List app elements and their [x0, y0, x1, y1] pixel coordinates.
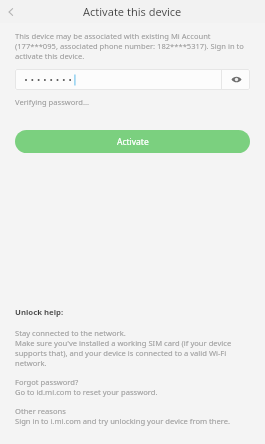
staticText: Verifying password...: [15, 97, 90, 107]
button[interactable]: Show password: [222, 69, 250, 90]
staticText: Activate: [117, 136, 149, 148]
staticText: Activate this device: [83, 4, 182, 19]
staticText: Stay connected to the network. Make sure…: [15, 328, 251, 368]
button[interactable]: [24, 73, 221, 87]
button[interactable]: Back: [0, 1, 22, 23]
staticText: Other reasons Sign in to i.mi.com and tr…: [15, 406, 231, 426]
staticText: Unlock help:: [15, 307, 64, 318]
staticText: This device may be associated with exist…: [15, 31, 251, 61]
staticText: Forgot password? Go to id.mi.com to rese…: [15, 377, 158, 397]
button[interactable]: Activate: [15, 130, 250, 153]
